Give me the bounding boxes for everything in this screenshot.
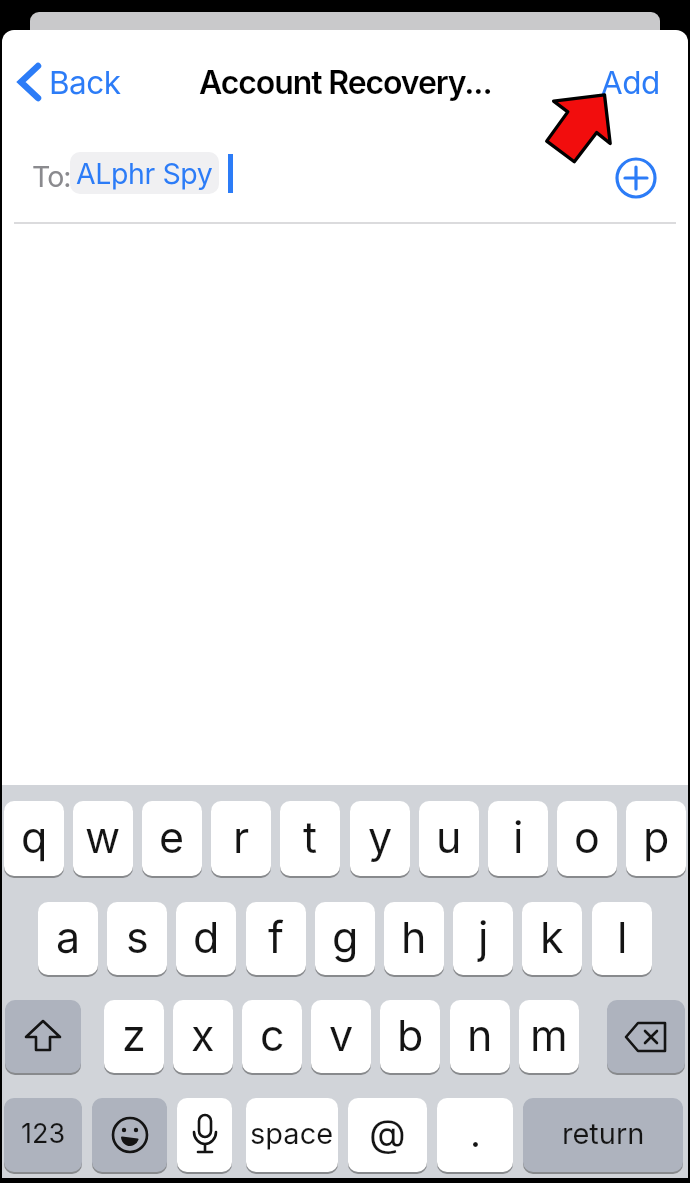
staticText: d <box>193 911 220 963</box>
button[interactable]: r <box>211 801 271 876</box>
button[interactable]: v <box>311 1000 371 1073</box>
button[interactable]: . <box>437 1098 513 1172</box>
button[interactable]: p <box>626 801 686 876</box>
staticText: f <box>268 911 284 963</box>
staticText: k <box>540 911 564 963</box>
button[interactable]: k <box>522 902 582 975</box>
button[interactable]: x <box>173 1000 233 1073</box>
button[interactable]: w <box>73 801 133 876</box>
button[interactable] <box>615 157 657 199</box>
button[interactable] <box>607 1000 685 1073</box>
button[interactable]: o <box>557 801 617 876</box>
button[interactable]: m <box>519 1000 579 1073</box>
button[interactable]: h <box>384 902 444 975</box>
staticText: w <box>85 811 121 863</box>
button[interactable]: ALphr Spy <box>70 152 219 194</box>
staticText: l <box>617 911 628 963</box>
button[interactable]: s <box>107 902 167 975</box>
button[interactable]: @ <box>348 1098 427 1172</box>
button[interactable]: b <box>380 1000 440 1073</box>
button[interactable]: return <box>523 1098 683 1172</box>
button[interactable]: c <box>242 1000 302 1073</box>
staticText: q <box>21 811 48 863</box>
staticText: p <box>643 811 670 863</box>
staticText: o <box>574 811 600 863</box>
button[interactable]: Back <box>16 63 121 101</box>
button[interactable]: q <box>4 801 64 876</box>
staticText: g <box>332 911 359 963</box>
staticText: z <box>122 1009 146 1061</box>
button[interactable]: l <box>592 902 652 975</box>
staticText: Back <box>49 63 121 101</box>
button[interactable] <box>92 1098 167 1172</box>
button[interactable] <box>5 1000 81 1073</box>
staticText: u <box>436 811 462 863</box>
button[interactable]: g <box>315 902 375 975</box>
staticText: v <box>329 1009 354 1061</box>
button[interactable]: u <box>419 801 479 876</box>
staticText: y <box>368 811 393 863</box>
staticText: 123 <box>21 1117 66 1150</box>
staticText: @ <box>369 1110 406 1156</box>
button[interactable]: 123 <box>4 1098 82 1172</box>
staticText: . <box>470 1110 481 1156</box>
staticText: h <box>401 911 427 963</box>
button[interactable]: a <box>38 902 98 975</box>
staticText: t <box>303 811 318 863</box>
staticText: c <box>260 1009 285 1061</box>
button[interactable]: space <box>246 1098 338 1172</box>
staticText: ALphr Spy <box>76 156 213 190</box>
button[interactable]: i <box>488 801 548 876</box>
staticText: space <box>250 1116 334 1151</box>
button[interactable]: y <box>350 801 410 876</box>
staticText: a <box>56 911 81 963</box>
button[interactable]: d <box>176 902 236 975</box>
staticText: b <box>397 1009 424 1061</box>
staticText: j <box>478 911 489 963</box>
staticText: e <box>159 811 185 863</box>
button[interactable]: e <box>142 801 202 876</box>
staticText: s <box>126 911 149 963</box>
button[interactable] <box>177 1098 232 1172</box>
staticText: i <box>513 811 524 863</box>
button[interactable]: Add <box>601 63 660 101</box>
staticText: n <box>467 1009 493 1061</box>
staticText: return <box>562 1116 645 1151</box>
button[interactable]: z <box>104 1000 164 1073</box>
button[interactable]: n <box>450 1000 510 1073</box>
staticText: x <box>191 1009 215 1061</box>
button[interactable]: f <box>246 902 306 975</box>
staticText: To: <box>32 159 71 193</box>
staticText: Add <box>601 63 660 101</box>
staticText: Account Recovery... <box>199 63 492 102</box>
staticText: m <box>530 1009 568 1061</box>
button[interactable]: t <box>280 801 340 876</box>
button[interactable]: j <box>453 902 513 975</box>
staticText: r <box>233 811 250 863</box>
